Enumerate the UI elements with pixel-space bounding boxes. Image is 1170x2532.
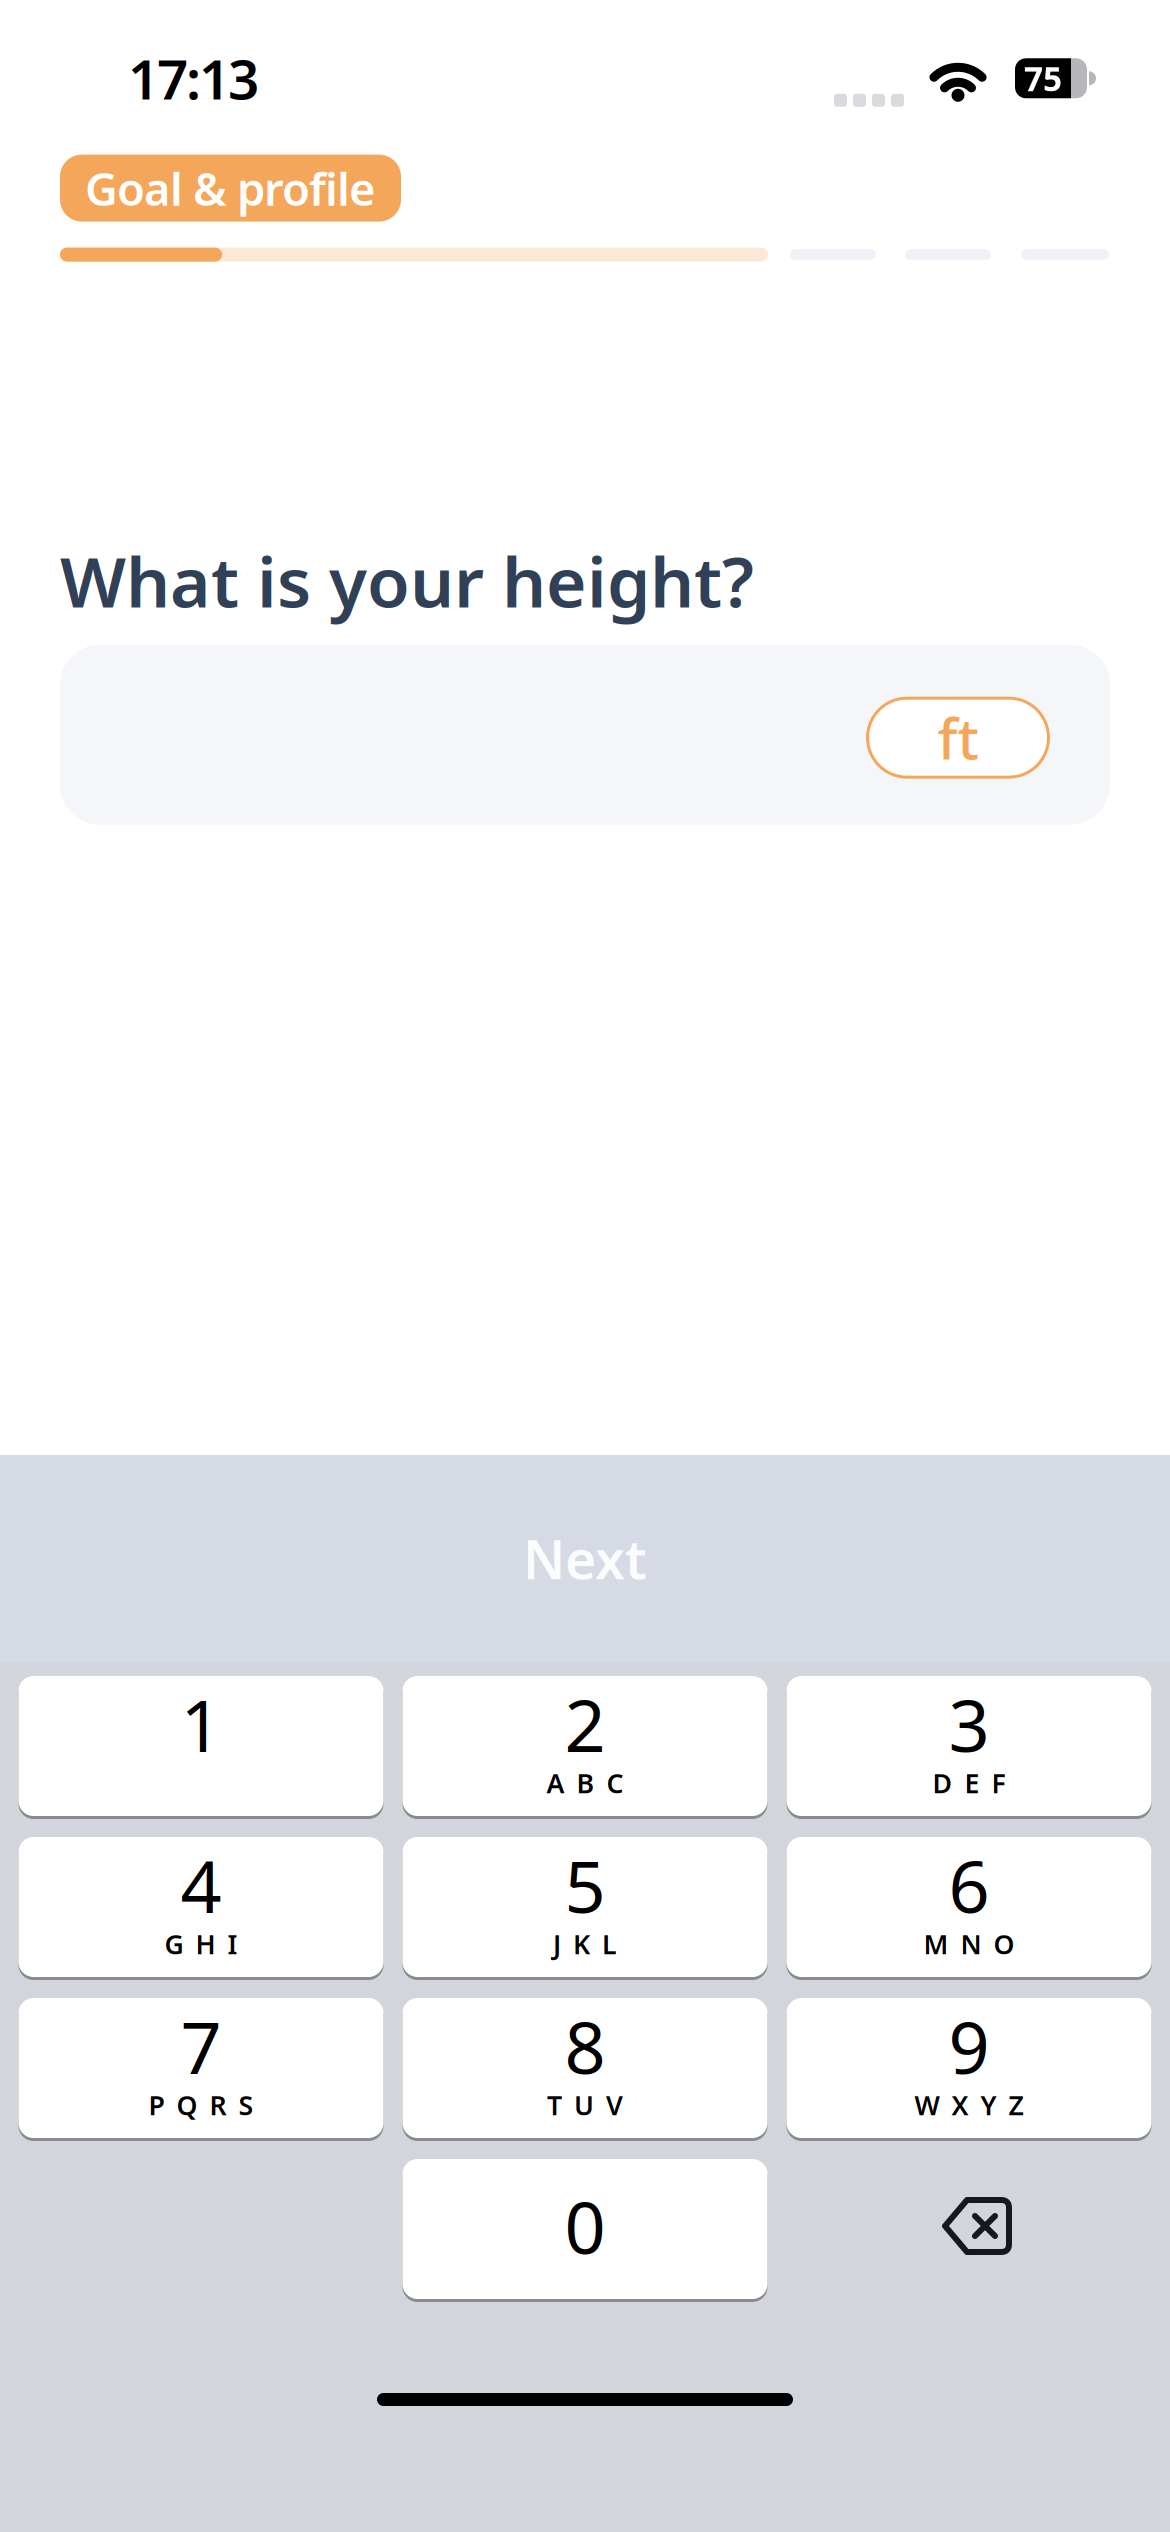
button[interactable]: 6 <box>786 1837 1151 1977</box>
staticText: MNO <box>923 1926 1014 1962</box>
staticText: Goal & profile <box>85 158 376 218</box>
button[interactable]: Next <box>0 1455 1170 1662</box>
staticText: 2 <box>564 1676 605 1772</box>
staticText: 6 <box>948 1837 989 1933</box>
button[interactable]: 3 <box>786 1676 1151 1816</box>
staticText: WXYZ <box>914 2087 1023 2123</box>
staticText: 3 <box>948 1676 989 1772</box>
staticText: 0 <box>564 2178 605 2274</box>
button[interactable]: Delete <box>786 2159 1151 2299</box>
staticText: 1 <box>180 1676 221 1772</box>
button[interactable]: 0 <box>402 2159 767 2299</box>
staticText: 7 <box>180 1998 221 2094</box>
staticText: 9 <box>948 1998 989 2094</box>
button[interactable]: ft <box>866 694 1050 776</box>
staticText: JKL <box>553 1926 617 1962</box>
button[interactable]: 7 <box>18 1998 383 2138</box>
staticText: ft <box>937 700 978 775</box>
staticText: 8 <box>564 1998 605 2094</box>
button[interactable]: 5 <box>402 1837 767 1977</box>
staticText: 5 <box>564 1837 605 1933</box>
staticText: PQRS <box>148 2087 253 2123</box>
staticText: TUV <box>547 2087 623 2123</box>
button[interactable]: 8 <box>402 1998 767 2138</box>
staticText: GHI <box>164 1926 237 1962</box>
button[interactable]: 4 <box>18 1837 383 1977</box>
button[interactable]: 2 <box>402 1676 767 1816</box>
staticText: What is your height? <box>60 535 754 627</box>
button[interactable]: 1 <box>18 1676 383 1816</box>
staticText: Next <box>523 1523 647 1594</box>
staticText: ABC <box>546 1765 623 1801</box>
staticText: 17:13 <box>128 42 259 115</box>
staticText: DEF <box>932 1765 1005 1801</box>
staticText: 75 <box>1024 56 1062 100</box>
staticText: 4 <box>180 1837 221 1933</box>
button[interactable]: 9 <box>786 1998 1151 2138</box>
